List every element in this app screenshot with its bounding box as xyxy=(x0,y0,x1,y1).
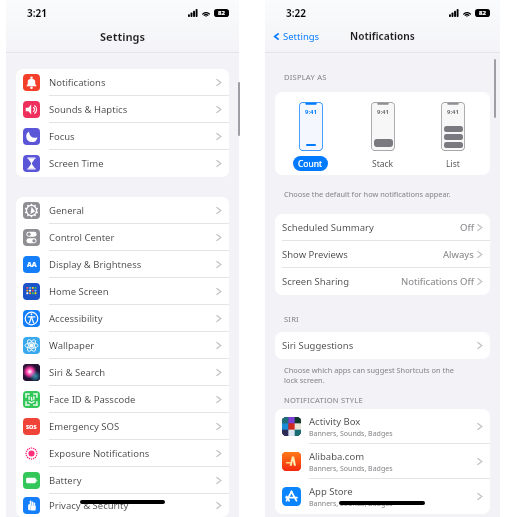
button[interactable]: Show Previews xyxy=(275,241,490,268)
staticText: Focus xyxy=(49,130,75,143)
button[interactable]: Sounds & Haptics xyxy=(16,96,229,123)
staticText: Accessibility xyxy=(49,312,103,325)
staticText: 3:21 xyxy=(27,6,47,20)
staticText: Off xyxy=(460,221,474,234)
staticText: 9:41 xyxy=(377,108,389,116)
staticText: Privacy & Security xyxy=(49,499,129,512)
staticText: Face ID & Passcode xyxy=(49,393,136,406)
staticText: Banners, Sounds, Badges xyxy=(309,464,393,474)
staticText: Choose which apps can suggest Shortcuts … xyxy=(284,365,454,385)
staticText: List xyxy=(446,158,460,170)
staticText: Display & Brightness xyxy=(49,258,142,271)
staticText: General xyxy=(49,204,85,217)
staticText: Always xyxy=(443,248,474,261)
button[interactable]: General xyxy=(16,197,229,224)
staticText: Show Previews xyxy=(282,248,348,261)
button[interactable]: Focus xyxy=(16,123,229,150)
staticText: Scheduled Summary xyxy=(282,221,374,234)
button[interactable]: Privacy & Security xyxy=(16,494,229,517)
staticText: Screen Time xyxy=(49,157,104,170)
staticText: 82 xyxy=(479,9,486,17)
button[interactable]: Screen Time xyxy=(16,150,229,177)
staticText: 9:41 xyxy=(305,108,317,116)
button[interactable]: Exposure Notifications xyxy=(16,440,229,467)
staticText: Settings xyxy=(283,30,320,43)
button[interactable]: Control Center xyxy=(16,224,229,251)
button[interactable]: Siri Suggestions xyxy=(275,332,490,359)
staticText: Wallpaper xyxy=(49,339,95,352)
staticText: Choose the default for how notifications… xyxy=(284,189,451,199)
button[interactable]: 9:41 xyxy=(293,102,328,171)
button[interactable]: Face ID & Passcode xyxy=(16,386,229,413)
staticText: Notifications xyxy=(49,76,106,89)
button[interactable]: Notifications xyxy=(16,69,229,96)
staticText: 9:41 xyxy=(447,108,459,116)
button[interactable]: AA xyxy=(16,251,229,278)
staticText: NOTIFICATION STYLE xyxy=(284,395,363,405)
button[interactable]: 9:41 xyxy=(435,102,470,171)
staticText: App Store xyxy=(309,485,353,498)
button[interactable]: 9:41 xyxy=(365,102,400,171)
button[interactable]: Scheduled Summary xyxy=(275,214,490,241)
staticText: Count xyxy=(298,158,323,170)
button[interactable]: Settings xyxy=(265,30,320,43)
staticText: Banners, Sounds, Badges xyxy=(309,429,393,439)
staticText: DISPLAY AS xyxy=(284,72,327,82)
button[interactable]: Screen Sharing xyxy=(275,268,490,295)
button[interactable]: Wallpaper xyxy=(16,332,229,359)
staticText: Notifications xyxy=(350,29,415,43)
staticText: Settings xyxy=(100,29,146,44)
staticText: SIRI xyxy=(284,314,299,324)
staticText: Home Screen xyxy=(49,285,109,298)
staticText: Siri Suggestions xyxy=(282,339,354,352)
staticText: 3:22 xyxy=(286,6,306,20)
staticText: Battery xyxy=(49,474,82,487)
staticText: Emergency SOS xyxy=(49,420,120,433)
staticText: Banners, Sounds, Badges xyxy=(309,499,393,509)
staticText: Sounds & Haptics xyxy=(49,103,128,116)
staticText: Exposure Notifications xyxy=(49,447,150,460)
button[interactable]: Siri & Search xyxy=(16,359,229,386)
staticText: Siri & Search xyxy=(49,366,106,379)
staticText: 82 xyxy=(218,9,225,17)
staticText: Activity Box xyxy=(309,415,361,428)
button[interactable]: App Store xyxy=(275,479,490,514)
button[interactable]: Activity Box xyxy=(275,409,490,444)
button[interactable]: Battery xyxy=(16,467,229,494)
staticText: Screen Sharing xyxy=(282,275,350,288)
staticText: Alibaba.com xyxy=(309,450,365,463)
button[interactable]: SOS xyxy=(16,413,229,440)
staticText: AA xyxy=(27,260,37,270)
button[interactable]: Home Screen xyxy=(16,278,229,305)
staticText: Stack xyxy=(372,158,394,170)
staticText: Control Center xyxy=(49,231,115,244)
staticText: Notifications Off xyxy=(401,275,474,288)
button[interactable]: Accessibility xyxy=(16,305,229,332)
button[interactable]: Alibaba.com xyxy=(275,444,490,479)
staticText: SOS xyxy=(26,423,37,430)
